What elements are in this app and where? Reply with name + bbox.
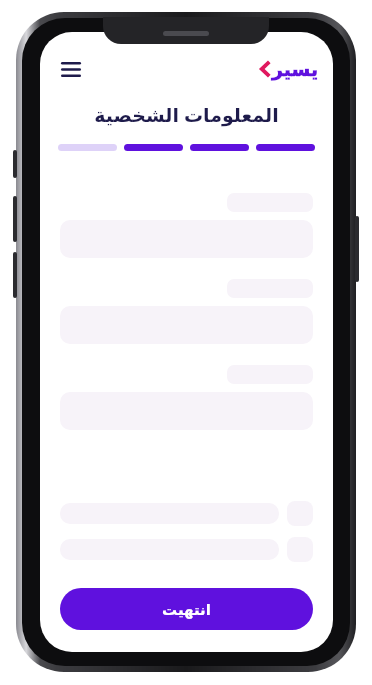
button[interactable]: Step xyxy=(124,144,183,151)
button[interactable]: انتهيت xyxy=(60,588,313,630)
staticText: يسير xyxy=(272,58,319,80)
button[interactable]: Step xyxy=(256,144,315,151)
button[interactable]: Step xyxy=(58,144,117,151)
staticText: المعلومات الشخصية xyxy=(40,102,333,128)
button[interactable]: Menu xyxy=(56,54,86,84)
staticText: انتهيت xyxy=(162,601,211,618)
button[interactable]: Step xyxy=(190,144,249,151)
